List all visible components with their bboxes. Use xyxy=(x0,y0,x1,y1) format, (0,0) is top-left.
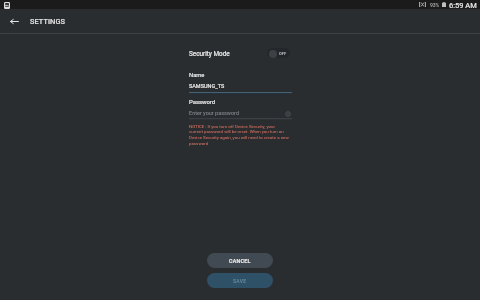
staticText: Password xyxy=(189,99,216,106)
staticText: SAMSUNG_TS xyxy=(189,83,225,89)
staticText: 6:59 AM xyxy=(449,1,477,10)
staticText: OFF xyxy=(279,51,287,56)
staticText: CANCEL xyxy=(229,258,251,264)
other: Show password xyxy=(285,111,291,117)
staticText: Security Mode xyxy=(189,50,230,58)
button[interactable]: Security Mode toggle, off xyxy=(267,48,290,58)
button[interactable]: Back xyxy=(5,12,23,30)
staticText: SETTINGS xyxy=(30,17,66,26)
staticText: SAVE xyxy=(233,278,247,284)
other: Saving notification xyxy=(4,2,10,9)
button[interactable]: SAVE xyxy=(207,273,273,288)
staticText: Name xyxy=(189,72,205,79)
staticText: Enter your password xyxy=(189,110,240,116)
staticText: NOTICE : If you turn off Device Security… xyxy=(189,124,299,147)
button[interactable]: CANCEL xyxy=(207,253,273,268)
other: Signal strength xyxy=(419,2,426,7)
staticText: 93% xyxy=(430,2,440,8)
